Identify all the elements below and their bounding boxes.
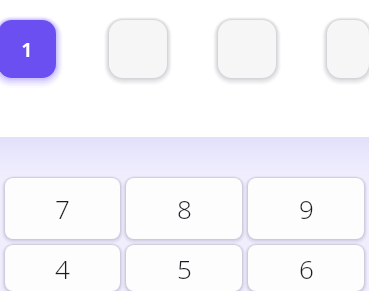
staticText: 7 bbox=[55, 191, 70, 226]
button[interactable]: 5 bbox=[126, 245, 242, 291]
button[interactable]: 7 bbox=[5, 178, 120, 239]
button[interactable]: 1 bbox=[0, 20, 56, 78]
button[interactable]: 9 bbox=[248, 178, 364, 239]
button[interactable]: Empty slot bbox=[327, 20, 369, 78]
button[interactable]: 8 bbox=[126, 178, 242, 239]
button[interactable]: Empty slot bbox=[109, 20, 167, 78]
staticText: 4 bbox=[55, 251, 70, 286]
button[interactable]: Empty slot bbox=[218, 20, 276, 78]
button[interactable]: 4 bbox=[5, 245, 120, 291]
staticText: 9 bbox=[299, 191, 314, 226]
staticText: 6 bbox=[299, 251, 314, 286]
staticText: 8 bbox=[177, 191, 192, 226]
button[interactable]: 6 bbox=[248, 245, 364, 291]
staticText: 5 bbox=[177, 251, 192, 286]
staticText: 1 bbox=[21, 36, 33, 63]
